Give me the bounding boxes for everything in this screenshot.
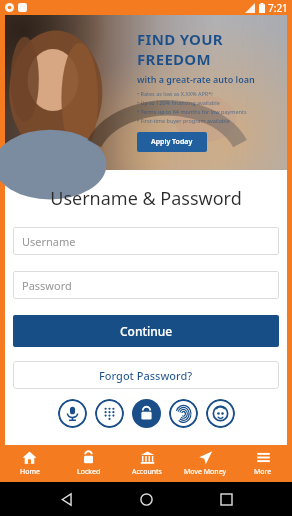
button[interactable]: Apply Today: [137, 132, 207, 152]
staticText: Locked: [77, 467, 101, 477]
staticText: FREEDOM: [137, 49, 211, 69]
button[interactable]: Password: [13, 271, 279, 299]
button[interactable]: Forgot Password?: [13, 361, 279, 389]
button[interactable]: Recent apps: [212, 485, 240, 513]
staticText: 7:21: [268, 1, 288, 15]
staticText: Username: [22, 234, 76, 249]
staticText: Continue: [120, 323, 173, 339]
button[interactable]: Continue: [13, 315, 279, 347]
staticText: • Terms up to 84 months for low payments: [137, 108, 247, 115]
staticText: Accounts: [132, 467, 162, 477]
staticText: with a great-rate auto loan: [137, 73, 255, 85]
staticText: Home: [20, 467, 40, 477]
button[interactable]: Move Money: [176, 445, 234, 482]
staticText: • Up to 120% financing available: [137, 99, 220, 106]
button[interactable]: Face login: [206, 399, 235, 428]
staticText: • Rates as low as X.XX% APR*!: [137, 90, 213, 97]
staticText: Forgot Password?: [99, 368, 193, 383]
staticText: Move Money: [184, 467, 227, 477]
staticText: Password: [22, 278, 72, 293]
button[interactable]: Voice login: [58, 399, 87, 428]
button[interactable]: Back: [52, 485, 80, 513]
staticText: More: [254, 467, 272, 477]
button[interactable]: Home: [0, 445, 59, 482]
button[interactable]: Lock: [132, 399, 161, 428]
button[interactable]: Accounts: [118, 445, 176, 482]
staticText: • First-time buyer program available: [137, 117, 230, 124]
button[interactable]: More: [234, 445, 292, 482]
button[interactable]: Home: [132, 485, 160, 513]
staticText: FIND YOUR: [137, 29, 223, 49]
button[interactable]: Fingerprint login: [169, 399, 198, 428]
button[interactable]: Locked: [59, 445, 118, 482]
button[interactable]: PIN keypad: [95, 399, 124, 428]
staticText: Apply Today: [151, 137, 193, 147]
button[interactable]: Username: [13, 227, 279, 255]
staticText: Username & Password: [5, 186, 287, 211]
